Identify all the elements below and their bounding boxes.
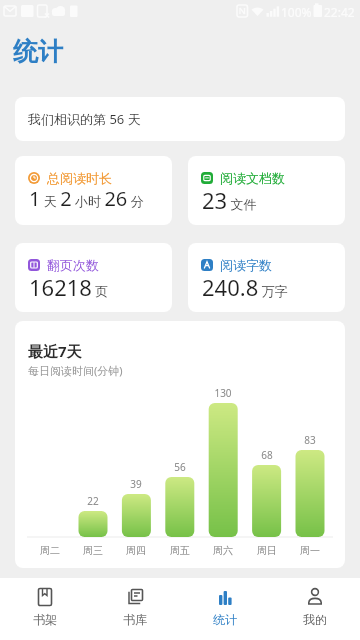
staticText: 我们相识的第 56 天 [28, 110, 141, 128]
staticText: 1 天 2 小时 26 分 [29, 185, 144, 212]
staticText: 书架 [33, 612, 57, 627]
staticText: 22 [87, 494, 99, 508]
staticText: 16218 页 [29, 272, 109, 302]
button[interactable]: 书架 [0, 578, 90, 640]
staticText: 周一 [300, 544, 320, 557]
button[interactable]: 统计 [180, 578, 270, 640]
staticText: 240.8 万字 [202, 272, 288, 302]
staticText: 每日阅读时间(分钟) [28, 363, 123, 378]
staticText: 书库 [123, 612, 147, 627]
staticText: 83 [304, 433, 316, 447]
staticText: 阅读字数 [220, 257, 272, 272]
button[interactable]: 我的 [270, 578, 360, 640]
staticText: 56 [174, 460, 186, 474]
staticText: 统计 [13, 36, 63, 67]
staticText: 周四 [126, 544, 146, 557]
staticText: 68 [261, 448, 273, 462]
staticText: 39 [130, 477, 142, 491]
staticText: 我的 [303, 612, 327, 627]
staticText: 统计 [213, 612, 237, 627]
staticText: 周六 [213, 544, 233, 557]
staticText: 23 文件 [202, 185, 257, 215]
staticText: 22:42 [324, 4, 355, 20]
button[interactable]: 书库 [90, 578, 180, 640]
staticText: 周二 [40, 544, 60, 557]
button[interactable]: 阅读字数 [188, 243, 345, 312]
staticText: 周三 [83, 544, 103, 557]
staticText: 总阅读时长 [47, 170, 112, 185]
staticText: 100% [281, 4, 312, 20]
staticText: 翻页次数 [47, 257, 99, 272]
staticText: 周五 [170, 544, 190, 557]
button[interactable]: 总阅读时长 [15, 156, 172, 225]
staticText: 周日 [257, 544, 277, 557]
button[interactable]: 翻页次数 [15, 243, 172, 312]
button[interactable]: 我们相识的第 56 天 [15, 97, 345, 141]
staticText: 最近7天 [28, 341, 82, 361]
staticText: 阅读文档数 [220, 170, 285, 185]
staticText: 130 [214, 386, 232, 400]
button[interactable]: 阅读文档数 [188, 156, 345, 225]
button[interactable]: 最近7天 [15, 321, 345, 568]
